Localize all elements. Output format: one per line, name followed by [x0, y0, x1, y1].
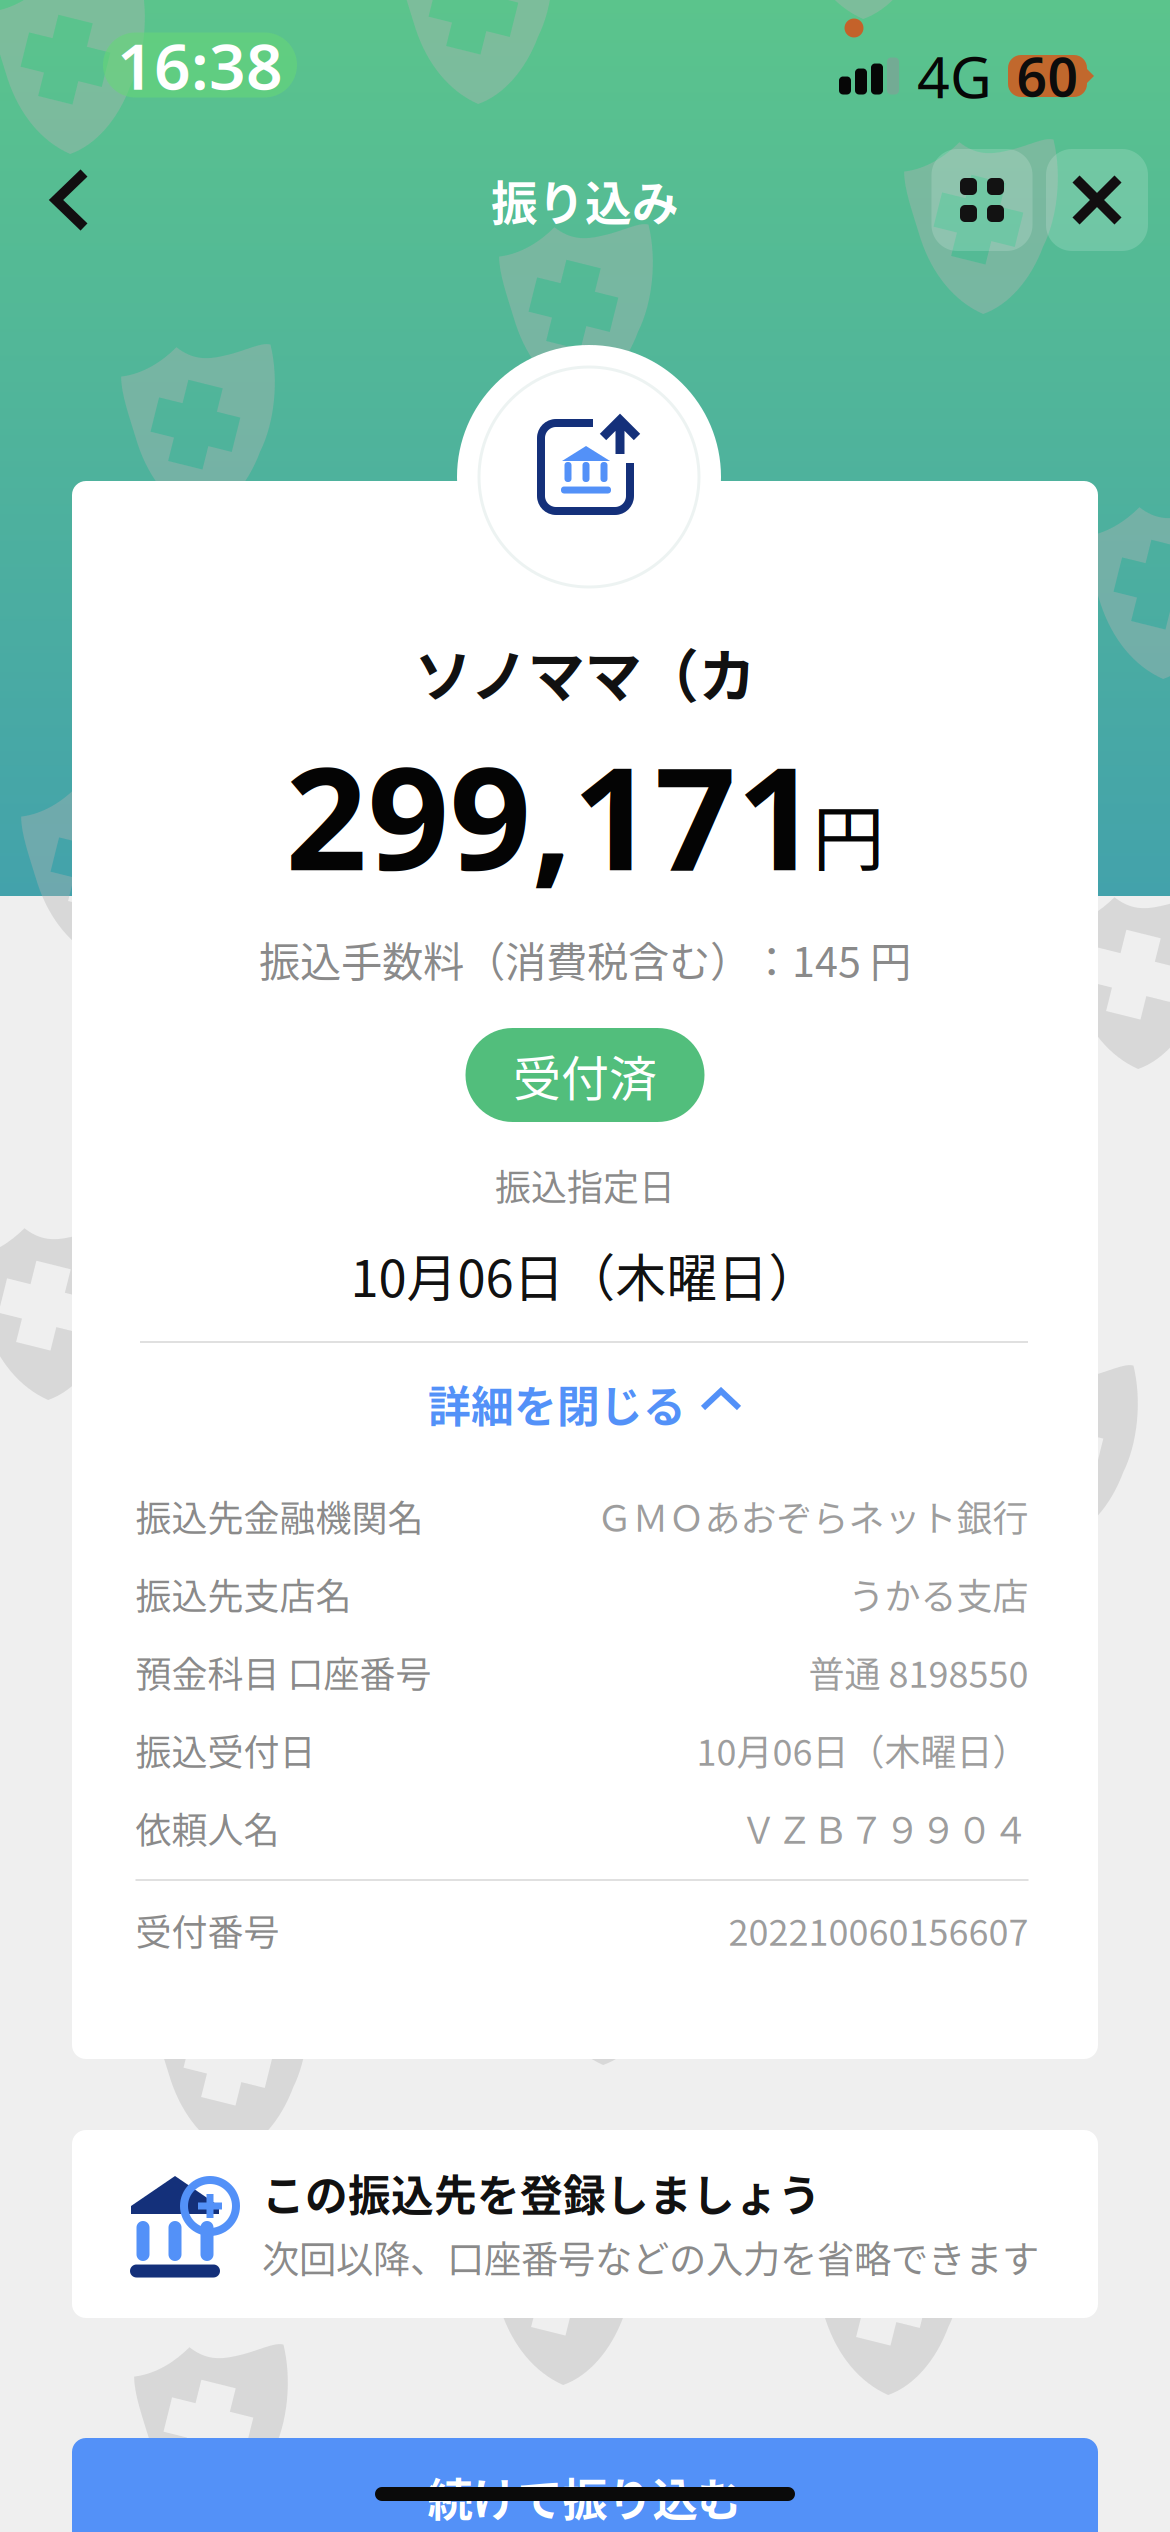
- staticText: ソノママ（カ: [414, 630, 755, 713]
- staticText: 普通 8198550: [808, 1646, 1028, 1698]
- button[interactable]: この振込先を登録しましょう: [72, 2130, 1098, 2318]
- staticText: 振込先金融機関名: [135, 1490, 423, 1542]
- staticText: 振り込み: [491, 166, 679, 234]
- staticText: 受付済: [513, 1040, 657, 1110]
- staticText: 4G: [917, 38, 992, 114]
- button[interactable]: 詳細を閉じる: [375, 1364, 795, 1444]
- staticText: 依頼人名: [135, 1802, 279, 1854]
- staticText: 次回以降、口座番号などの入力を省略できます: [262, 2230, 1039, 2284]
- staticText: 預金科目 口座番号: [135, 1646, 431, 1698]
- staticText: 202210060156607: [728, 1904, 1028, 1956]
- staticText: 振込指定日: [495, 1159, 675, 1211]
- staticText: ＶＺＢ７９９０４: [740, 1802, 1028, 1854]
- staticText: この振込先を登録しましょう: [262, 2162, 821, 2224]
- staticText: 10月06日（木曜日）: [696, 1724, 1028, 1776]
- staticText: うかる支店: [848, 1568, 1028, 1620]
- staticText: 振込手数料（消費税含む）：145 円: [259, 929, 911, 989]
- staticText: 受付番号: [135, 1904, 279, 1956]
- staticText: 16:38: [117, 22, 283, 107]
- staticText: 続けて振り込む: [427, 2464, 742, 2530]
- staticText: ＧＭＯあおぞらネット銀行: [596, 1490, 1028, 1542]
- staticText: 299,171: [285, 720, 818, 910]
- button[interactable]: Back: [14, 144, 126, 256]
- staticText: 円: [812, 781, 884, 885]
- staticText: 10月06日（木曜日）: [350, 1238, 819, 1312]
- staticText: 詳細を閉じる: [428, 1373, 686, 1435]
- staticText: 60: [1016, 41, 1078, 111]
- button[interactable]: Apps: [931, 149, 1032, 251]
- staticText: 振込先支店名: [135, 1568, 351, 1620]
- button[interactable]: Close: [1046, 149, 1148, 251]
- button[interactable]: 続けて振り込む: [72, 2438, 1098, 2532]
- staticText: 振込受付日: [135, 1724, 315, 1776]
